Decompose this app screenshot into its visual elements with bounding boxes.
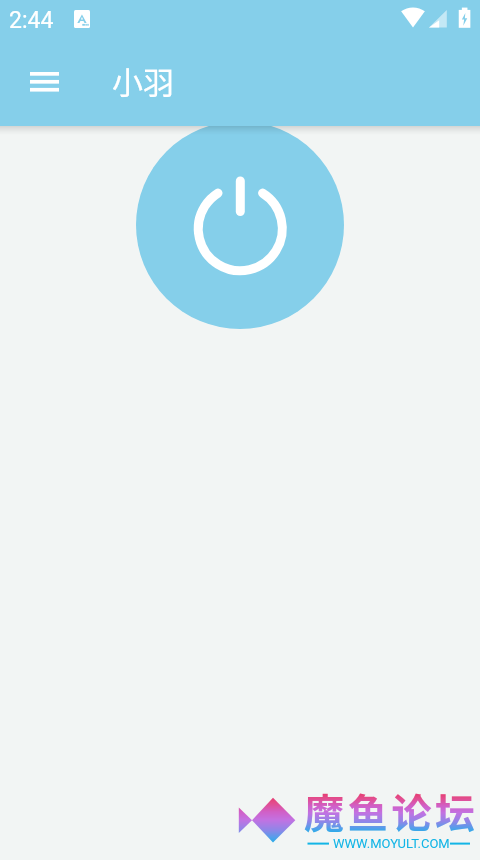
staticText: 魔鱼论坛 [304,782,479,840]
button[interactable]: Open navigation menu [20,58,68,106]
button[interactable]: Power [136,121,344,329]
staticText: 小羽 [112,58,174,103]
staticText: 2:44 [9,7,54,34]
staticText: WWW.MOYULT.COM [333,836,450,851]
